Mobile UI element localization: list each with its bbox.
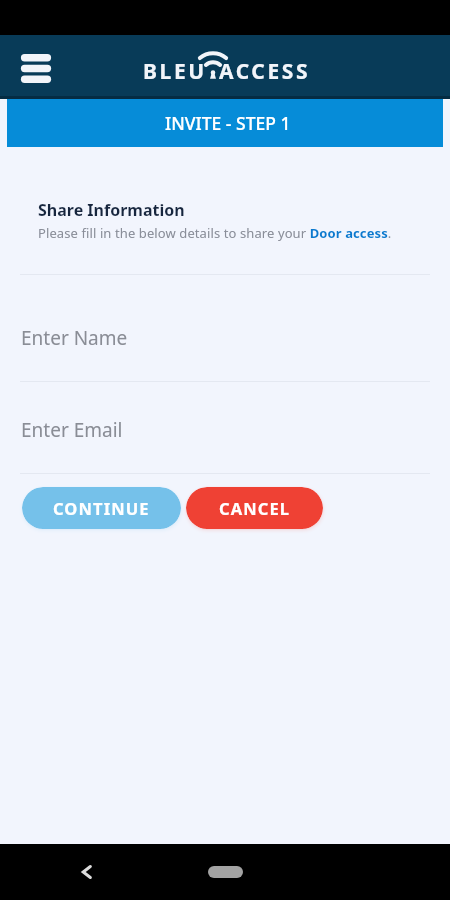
button[interactable]: Enter Name: [0, 275, 450, 381]
staticText: Share Information: [38, 199, 185, 221]
staticText: Please fill in the below details to shar…: [38, 224, 392, 242]
button[interactable]: Back: [66, 852, 106, 892]
button[interactable]: Home: [208, 866, 243, 878]
staticText: CANCEL: [219, 497, 291, 519]
staticText: INVITE - STEP 1: [165, 111, 291, 135]
button[interactable]: INVITE - STEP 1: [7, 99, 443, 147]
button[interactable]: Open navigation menu: [12, 43, 60, 91]
staticText: Enter Email: [21, 417, 123, 443]
button[interactable]: Enter Email: [0, 382, 450, 473]
button[interactable]: CANCEL: [186, 487, 323, 529]
button[interactable]: CONTINUE: [22, 487, 181, 529]
staticText: BLEU: [143, 57, 207, 86]
staticText: ACCESS: [219, 57, 311, 86]
staticText: Enter Name: [21, 325, 128, 351]
staticText: CONTINUE: [53, 497, 150, 519]
